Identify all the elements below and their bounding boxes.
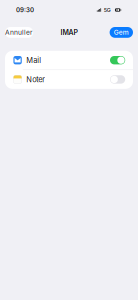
staticText: Gem (114, 28, 129, 36)
button[interactable]: Annuller (5, 27, 33, 38)
staticText: 09:30 (16, 6, 34, 14)
staticText: Noter (26, 75, 45, 84)
staticText: Annuller (5, 28, 33, 36)
staticText: 5G (104, 7, 111, 13)
staticText: Mail (26, 56, 41, 65)
button[interactable]: Gem (110, 27, 133, 38)
staticText: IMAP (60, 28, 77, 37)
button[interactable]: Mail (5, 51, 133, 70)
button[interactable]: Noter (5, 70, 133, 89)
